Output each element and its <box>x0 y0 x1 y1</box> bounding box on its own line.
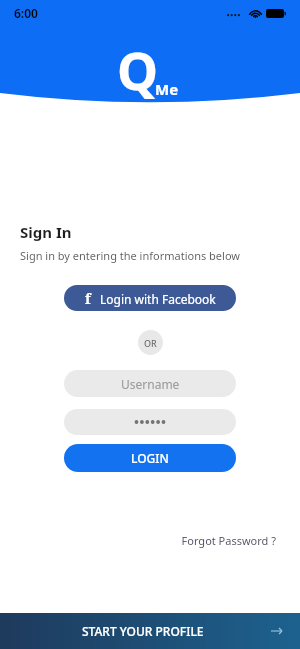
staticText: Sign In <box>20 222 72 242</box>
button[interactable]: START YOUR PROFILE <box>0 613 300 649</box>
staticText: START YOUR PROFILE <box>82 623 204 639</box>
button[interactable]: Forgot Password ? <box>177 530 280 551</box>
button[interactable]: Password <box>64 409 236 435</box>
staticText: Sign in by entering the informations bel… <box>20 248 240 263</box>
staticText: LOGIN <box>131 450 169 466</box>
staticText: Forgot Password ? <box>181 533 276 548</box>
staticText: 6:00 <box>14 5 38 21</box>
staticText: Me <box>155 79 179 99</box>
other: Continue <box>270 624 284 638</box>
staticText: f <box>85 289 91 308</box>
staticText: Username <box>121 376 180 392</box>
button[interactable]: f <box>64 285 236 311</box>
button[interactable]: Username <box>64 370 236 397</box>
staticText: Login with Facebook <box>100 291 216 307</box>
button[interactable]: LOGIN <box>64 444 236 472</box>
staticText: OR <box>144 337 157 349</box>
staticText: Q <box>117 34 159 105</box>
